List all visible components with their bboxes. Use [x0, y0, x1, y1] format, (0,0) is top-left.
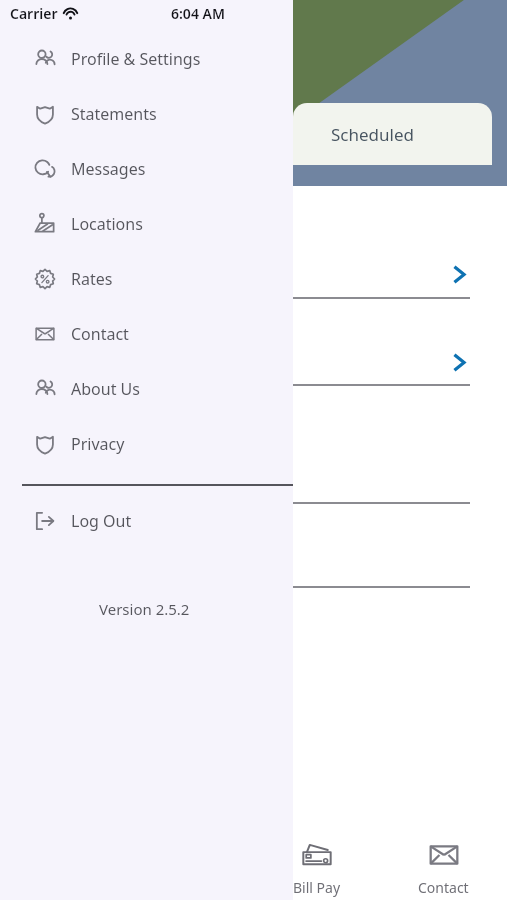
staticText: Version 2.5.2 — [99, 599, 190, 619]
button[interactable] — [0, 186, 492, 297]
staticText: About Us — [71, 378, 140, 400]
button[interactable]: Privacy — [0, 416, 293, 471]
staticText: 6:04 AM — [171, 4, 225, 23]
button[interactable]: Contact — [380, 804, 507, 900]
staticText: Statements — [71, 103, 157, 125]
button[interactable]: Locations — [0, 196, 293, 251]
button[interactable]: Profile & Settings — [0, 31, 293, 86]
staticText: Carrier — [10, 4, 58, 23]
staticText: Profile & Settings — [71, 48, 201, 70]
staticText: Messages — [71, 158, 146, 180]
button[interactable]: Bill Pay — [253, 804, 380, 900]
staticText: Contact — [418, 878, 469, 897]
button[interactable]: Contact — [0, 306, 293, 361]
other: Open details — [450, 353, 469, 372]
button[interactable]: Statements — [0, 86, 293, 141]
staticText: Scheduled — [331, 123, 414, 146]
staticText: Rates — [71, 268, 113, 290]
button[interactable] — [0, 298, 492, 409]
staticText: Bill Pay — [293, 878, 341, 897]
button[interactable]: Scheduled — [293, 103, 492, 165]
button[interactable]: Rates — [0, 251, 293, 306]
button[interactable]: Messages — [0, 141, 293, 196]
button[interactable]: About Us — [0, 361, 293, 416]
other: Open details — [450, 265, 469, 284]
staticText: Locations — [71, 213, 143, 235]
staticText: Privacy — [71, 433, 125, 455]
staticText: Log Out — [71, 510, 132, 532]
button[interactable]: Log Out — [0, 499, 293, 543]
staticText: Contact — [71, 323, 129, 345]
